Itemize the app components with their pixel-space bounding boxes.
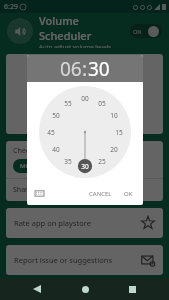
button[interactable]: ON <box>130 24 162 38</box>
staticText: Check for update <box>13 146 70 156</box>
staticText: OK <box>124 190 133 198</box>
button[interactable]: Recents <box>122 279 142 299</box>
staticText: Report issue or suggestions <box>14 255 141 265</box>
staticText: 20 <box>110 145 118 154</box>
staticText: Volume Scheduler <box>39 13 130 43</box>
staticText: 15 <box>115 128 123 137</box>
staticText: 45 <box>47 128 55 137</box>
staticText: ON <box>133 28 142 35</box>
staticText: Auto adjust volume levels <box>39 43 111 48</box>
staticText: Rate app on playstore <box>14 218 141 228</box>
staticText: 35 <box>64 157 72 166</box>
staticText: 30 <box>88 56 110 82</box>
staticText: 06 <box>60 56 82 82</box>
staticText: : <box>82 56 88 82</box>
staticText: 50 <box>52 111 60 120</box>
button[interactable]: Back <box>27 279 47 299</box>
staticText: Share app <box>13 185 47 195</box>
button[interactable]: CANCEL <box>85 188 116 200</box>
staticText: 25 <box>98 157 106 166</box>
staticText: 6:29 <box>4 2 18 12</box>
button[interactable]: Rate app on playstore <box>6 208 163 238</box>
staticText: 10 <box>110 111 118 120</box>
button[interactable]: Home <box>75 279 95 299</box>
staticText: 05 <box>98 99 106 108</box>
staticText: 00 <box>81 94 89 103</box>
staticText: CANCEL <box>89 190 112 198</box>
button[interactable] <box>6 54 163 134</box>
staticText: 30 <box>81 162 89 171</box>
button[interactable]: Check for update <box>6 141 163 178</box>
button[interactable]: Report issue or suggestions <box>6 245 163 275</box>
staticText: 40 <box>52 145 60 154</box>
button[interactable]: Keyboard input <box>33 187 46 200</box>
staticText: MORE <box>20 162 38 170</box>
staticText: 55 <box>64 99 72 108</box>
button[interactable]: OK <box>120 188 137 200</box>
button[interactable]: Share app <box>6 179 163 201</box>
